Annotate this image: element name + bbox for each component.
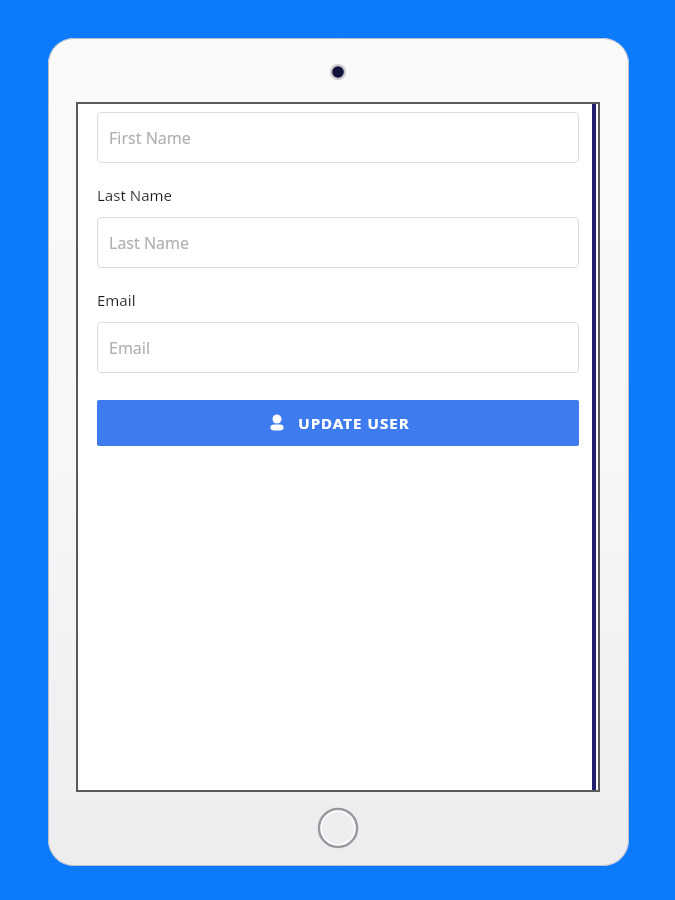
staticText: Email bbox=[109, 337, 151, 359]
staticText: Last Name bbox=[109, 232, 190, 254]
button[interactable]: First Name bbox=[97, 112, 579, 163]
button[interactable]: Last Name bbox=[97, 217, 579, 268]
other: Home bbox=[316, 806, 360, 850]
staticText: Last Name bbox=[97, 185, 173, 205]
staticText: First Name bbox=[109, 127, 191, 149]
staticText: Email bbox=[97, 290, 136, 310]
staticText: UPDATE USER bbox=[298, 413, 410, 433]
button[interactable]: UPDATE USER bbox=[97, 400, 579, 446]
button[interactable]: Email bbox=[97, 322, 579, 373]
